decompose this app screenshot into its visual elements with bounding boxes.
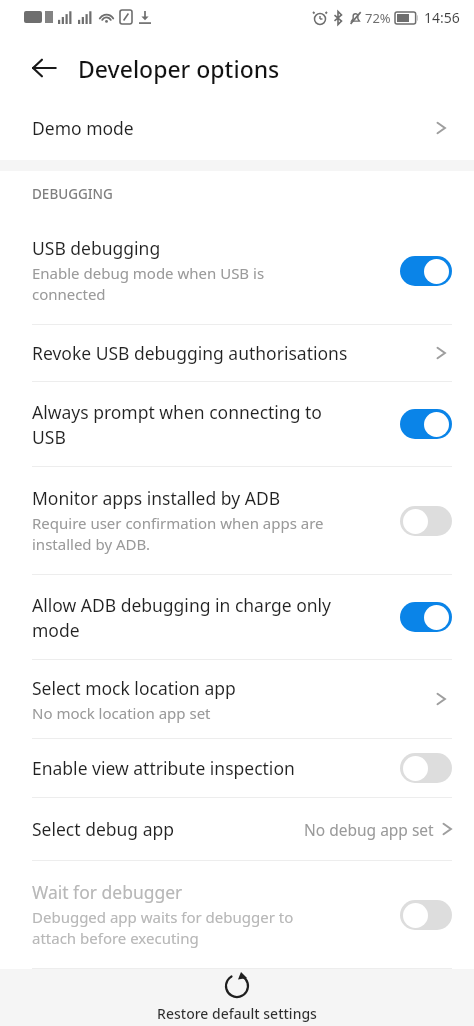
staticText: DEBUGGING: [32, 185, 113, 203]
button[interactable]: Restore default settings: [0, 969, 474, 1026]
button[interactable]: Back: [22, 46, 66, 90]
button[interactable]: Monitor apps installed by ADB: [0, 467, 474, 574]
staticText: Demo mode: [32, 116, 434, 140]
button[interactable]: Demo mode: [0, 102, 474, 154]
staticText: Require user confirmation when apps are …: [32, 513, 324, 555]
staticText: Select debug app: [32, 817, 304, 841]
button[interactable]: Off: [400, 900, 452, 930]
button[interactable]: Always prompt when connecting to USB: [0, 382, 474, 466]
staticText: Restore default settings: [157, 1004, 317, 1023]
staticText: Select mock location app: [32, 676, 236, 700]
button[interactable]: Select mock location app: [0, 660, 474, 738]
staticText: USB debugging: [32, 236, 161, 260]
button[interactable]: Off: [400, 506, 452, 536]
staticText: Always prompt when connecting to USB: [32, 400, 400, 449]
button[interactable]: On: [400, 409, 452, 439]
staticText: Monitor apps installed by ADB: [32, 486, 281, 510]
staticText: Developer options: [78, 53, 280, 84]
button[interactable]: Revoke USB debugging authorisations: [0, 325, 474, 381]
staticText: Wait for debugger: [32, 880, 183, 904]
button[interactable]: Enable view attribute inspection: [0, 739, 474, 797]
staticText: Allow ADB debugging in charge only mode: [32, 593, 400, 642]
button[interactable]: On: [400, 256, 452, 286]
staticText: 14:56: [424, 8, 460, 27]
button[interactable]: On: [400, 602, 452, 632]
button[interactable]: Select debug app: [0, 798, 474, 860]
staticText: No debug app set: [304, 819, 434, 840]
button[interactable]: Allow ADB debugging in charge only mode: [0, 575, 474, 659]
staticText: 72%: [365, 9, 391, 27]
staticText: Enable debug mode when USB is connected: [32, 263, 265, 305]
staticText: Enable view attribute inspection: [32, 756, 400, 780]
button[interactable]: Off: [400, 753, 452, 783]
staticText: Revoke USB debugging authorisations: [32, 341, 434, 365]
button[interactable]: USB debugging: [0, 217, 474, 324]
staticText: Debugged app waits for debugger to attac…: [32, 907, 294, 949]
staticText: No mock location app set: [32, 703, 211, 723]
button[interactable]: Wait for debugger: [0, 861, 474, 968]
